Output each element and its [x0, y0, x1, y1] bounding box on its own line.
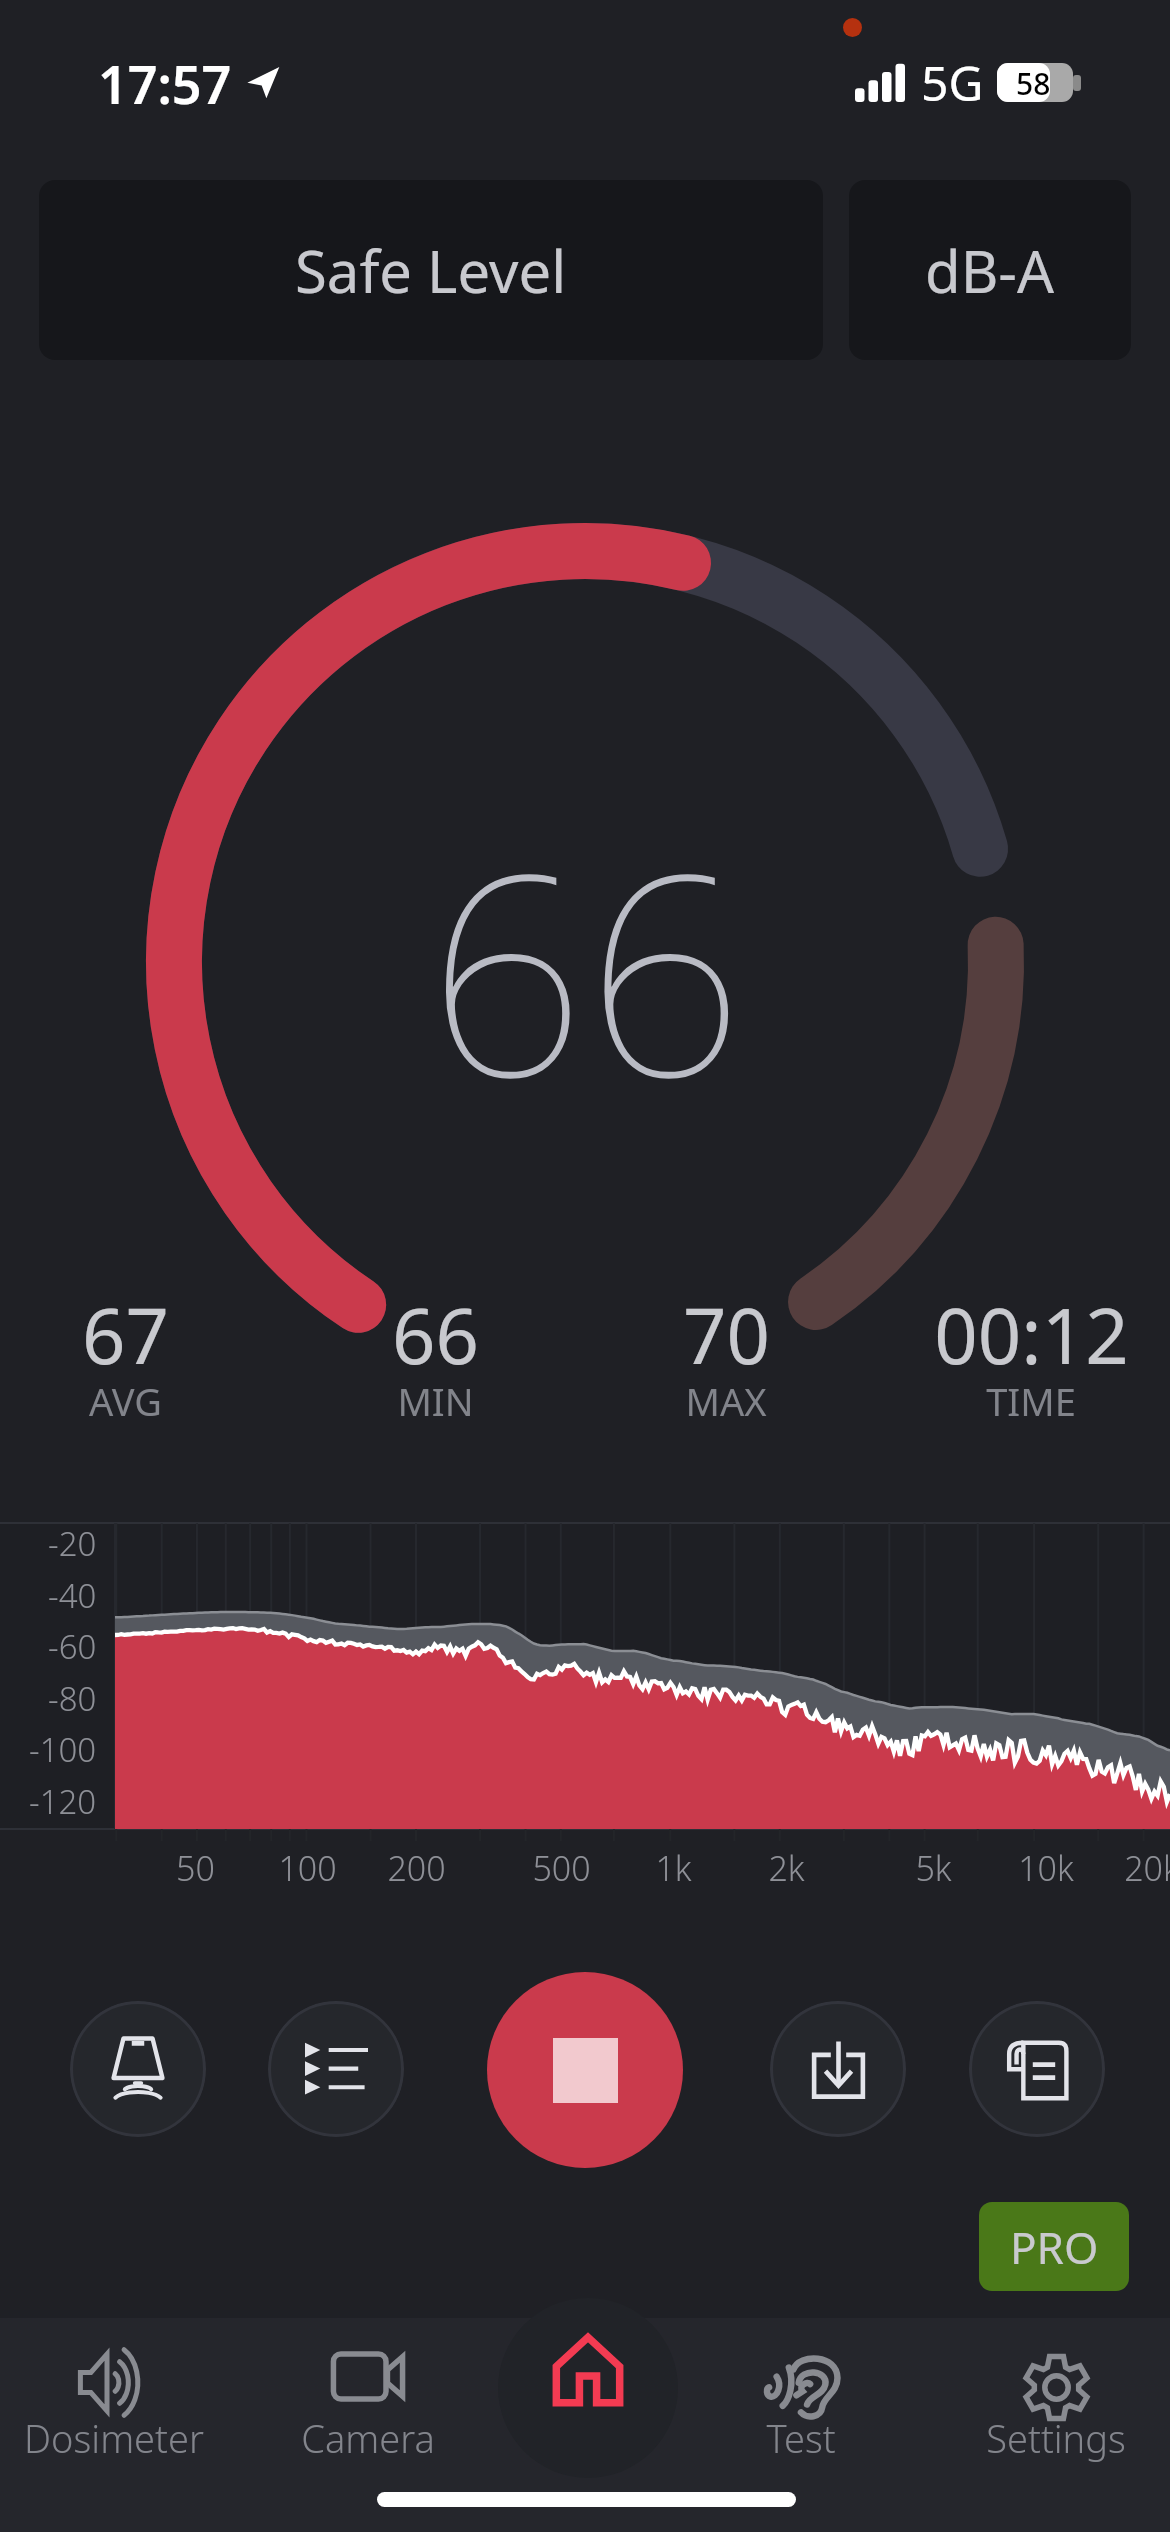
staticText: 200	[387, 1845, 446, 1891]
staticText: 66	[427, 779, 744, 1158]
staticText: 67	[82, 1283, 169, 1387]
staticText: Test	[766, 2412, 836, 2464]
staticText: 17:57	[98, 48, 232, 119]
button[interactable]: Camera	[248, 2340, 488, 2460]
staticText: Settings	[986, 2412, 1126, 2464]
staticText: -100	[29, 1727, 97, 1772]
button[interactable]: dB-A	[849, 180, 1131, 360]
staticText: 5k	[915, 1845, 952, 1891]
staticText: AVG	[89, 1375, 162, 1427]
staticText: TIME	[986, 1375, 1076, 1427]
button[interactable]: Safe Level	[39, 180, 823, 360]
button[interactable]: Calibrate	[70, 2001, 206, 2137]
button[interactable]: Report	[969, 2001, 1105, 2137]
staticText: 1k	[655, 1845, 692, 1891]
staticText: 70	[683, 1283, 770, 1387]
staticText: 500	[532, 1845, 591, 1891]
staticText: 66	[392, 1283, 479, 1387]
button[interactable]: Dosimeter	[0, 2340, 234, 2460]
button[interactable]: Home	[498, 2298, 678, 2478]
staticText: MAX	[685, 1375, 767, 1427]
staticText: -20	[48, 1521, 97, 1566]
staticText: Camera	[301, 2412, 435, 2464]
staticText: 20k	[1124, 1845, 1170, 1891]
staticText: -80	[48, 1676, 97, 1721]
staticText: Dosimeter	[24, 2412, 204, 2464]
staticText: -60	[48, 1624, 97, 1669]
staticText: 00:12	[934, 1283, 1129, 1387]
button[interactable]: PRO	[979, 2202, 1129, 2291]
button[interactable]: Stop recording	[487, 1972, 683, 2168]
button[interactable]: Save	[770, 2001, 906, 2137]
staticText: -120	[29, 1779, 97, 1824]
staticText: 100	[278, 1845, 337, 1891]
button[interactable]: Sound list	[268, 2001, 404, 2137]
staticText: -40	[48, 1573, 97, 1618]
staticText: 2k	[768, 1845, 805, 1891]
staticText: 58	[1016, 63, 1051, 102]
staticText: PRO	[1010, 2217, 1099, 2277]
staticText: MIN	[397, 1375, 474, 1427]
staticText: 10k	[1018, 1845, 1074, 1891]
staticText: dB-A	[925, 231, 1055, 310]
button[interactable]: Test	[681, 2340, 921, 2460]
staticText: 50	[176, 1845, 215, 1891]
staticText: 5G	[921, 50, 984, 115]
staticText: Safe Level	[295, 231, 567, 310]
button[interactable]: Settings	[936, 2340, 1170, 2460]
